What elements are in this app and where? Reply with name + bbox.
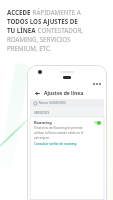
button[interactable]: Toggle (93, 120, 101, 125)
staticText: RÁPIDAMENTE A (31, 8, 81, 16)
staticText: TU LÍNEA (7, 26, 36, 34)
staticText: El servicio de Roaming te permite (34, 126, 83, 130)
staticText: PREMIUM, ETC. (7, 44, 52, 52)
staticText: Consultar tarifas de roaming (34, 142, 77, 146)
staticText: Ajustes de línea (44, 90, 84, 97)
staticText: TODOS LOS AJUSTES DE (7, 17, 78, 25)
staticText: Roaming (34, 120, 52, 125)
staticText: CONTESTADOR, (36, 26, 84, 34)
staticText: extranjero. (34, 136, 50, 140)
staticText: SERVICIOS (34, 111, 50, 115)
button[interactable]: Roaming (30, 117, 104, 200)
button[interactable]: Back (34, 90, 41, 97)
staticText: ROAMING, SERVICIOS (7, 35, 71, 43)
staticText: utilizar tu línea cuando estás en el (34, 131, 84, 135)
staticText: Mano: 600000000 (39, 101, 66, 105)
staticText: ACCEDE (7, 8, 31, 16)
button[interactable]: Mano: 600000000 (34, 99, 104, 107)
